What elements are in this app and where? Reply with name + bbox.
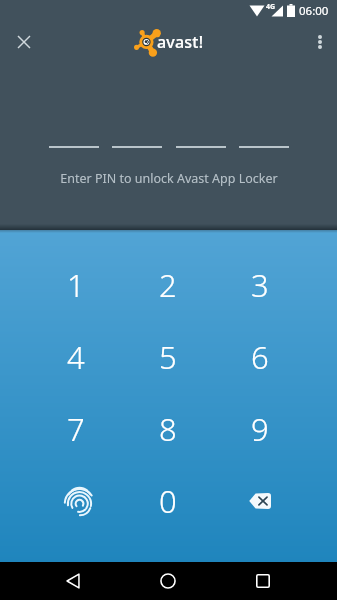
button[interactable]: 6 bbox=[214, 321, 306, 393]
staticText: Enter PIN to unlock Avast App Locker bbox=[60, 170, 278, 187]
staticText: 6 bbox=[251, 336, 269, 378]
button[interactable]: Close bbox=[6, 24, 42, 60]
staticText: 06:00 bbox=[299, 3, 329, 19]
staticText: 1 bbox=[67, 264, 85, 306]
staticText: 4 bbox=[67, 336, 85, 378]
staticText: 0 bbox=[159, 480, 177, 522]
button[interactable]: 8 bbox=[122, 393, 214, 465]
button[interactable]: 9 bbox=[214, 393, 306, 465]
staticText: 7 bbox=[67, 408, 85, 450]
staticText: 3 bbox=[251, 264, 269, 306]
button[interactable]: Home bbox=[144, 562, 192, 600]
button[interactable]: 3 bbox=[214, 249, 306, 321]
button[interactable]: More options bbox=[303, 24, 337, 60]
other: Delete bbox=[249, 493, 271, 509]
staticText: avast! bbox=[157, 31, 204, 53]
button[interactable]: 0 bbox=[122, 465, 214, 537]
other: Unlock with fingerprint bbox=[64, 484, 95, 518]
button[interactable]: Back bbox=[49, 562, 97, 600]
button[interactable]: Unlock with fingerprint bbox=[30, 465, 122, 537]
button[interactable]: 5 bbox=[122, 321, 214, 393]
button[interactable]: Recent apps bbox=[239, 562, 287, 600]
staticText: 8 bbox=[159, 408, 177, 450]
button[interactable]: 7 bbox=[30, 393, 122, 465]
staticText: 4G bbox=[266, 2, 276, 12]
button[interactable]: Delete bbox=[214, 465, 306, 537]
staticText: 5 bbox=[159, 336, 177, 378]
staticText: 9 bbox=[251, 408, 269, 450]
button[interactable]: 2 bbox=[122, 249, 214, 321]
button[interactable]: 1 bbox=[30, 249, 122, 321]
button[interactable]: 4 bbox=[30, 321, 122, 393]
staticText: 2 bbox=[159, 264, 177, 306]
